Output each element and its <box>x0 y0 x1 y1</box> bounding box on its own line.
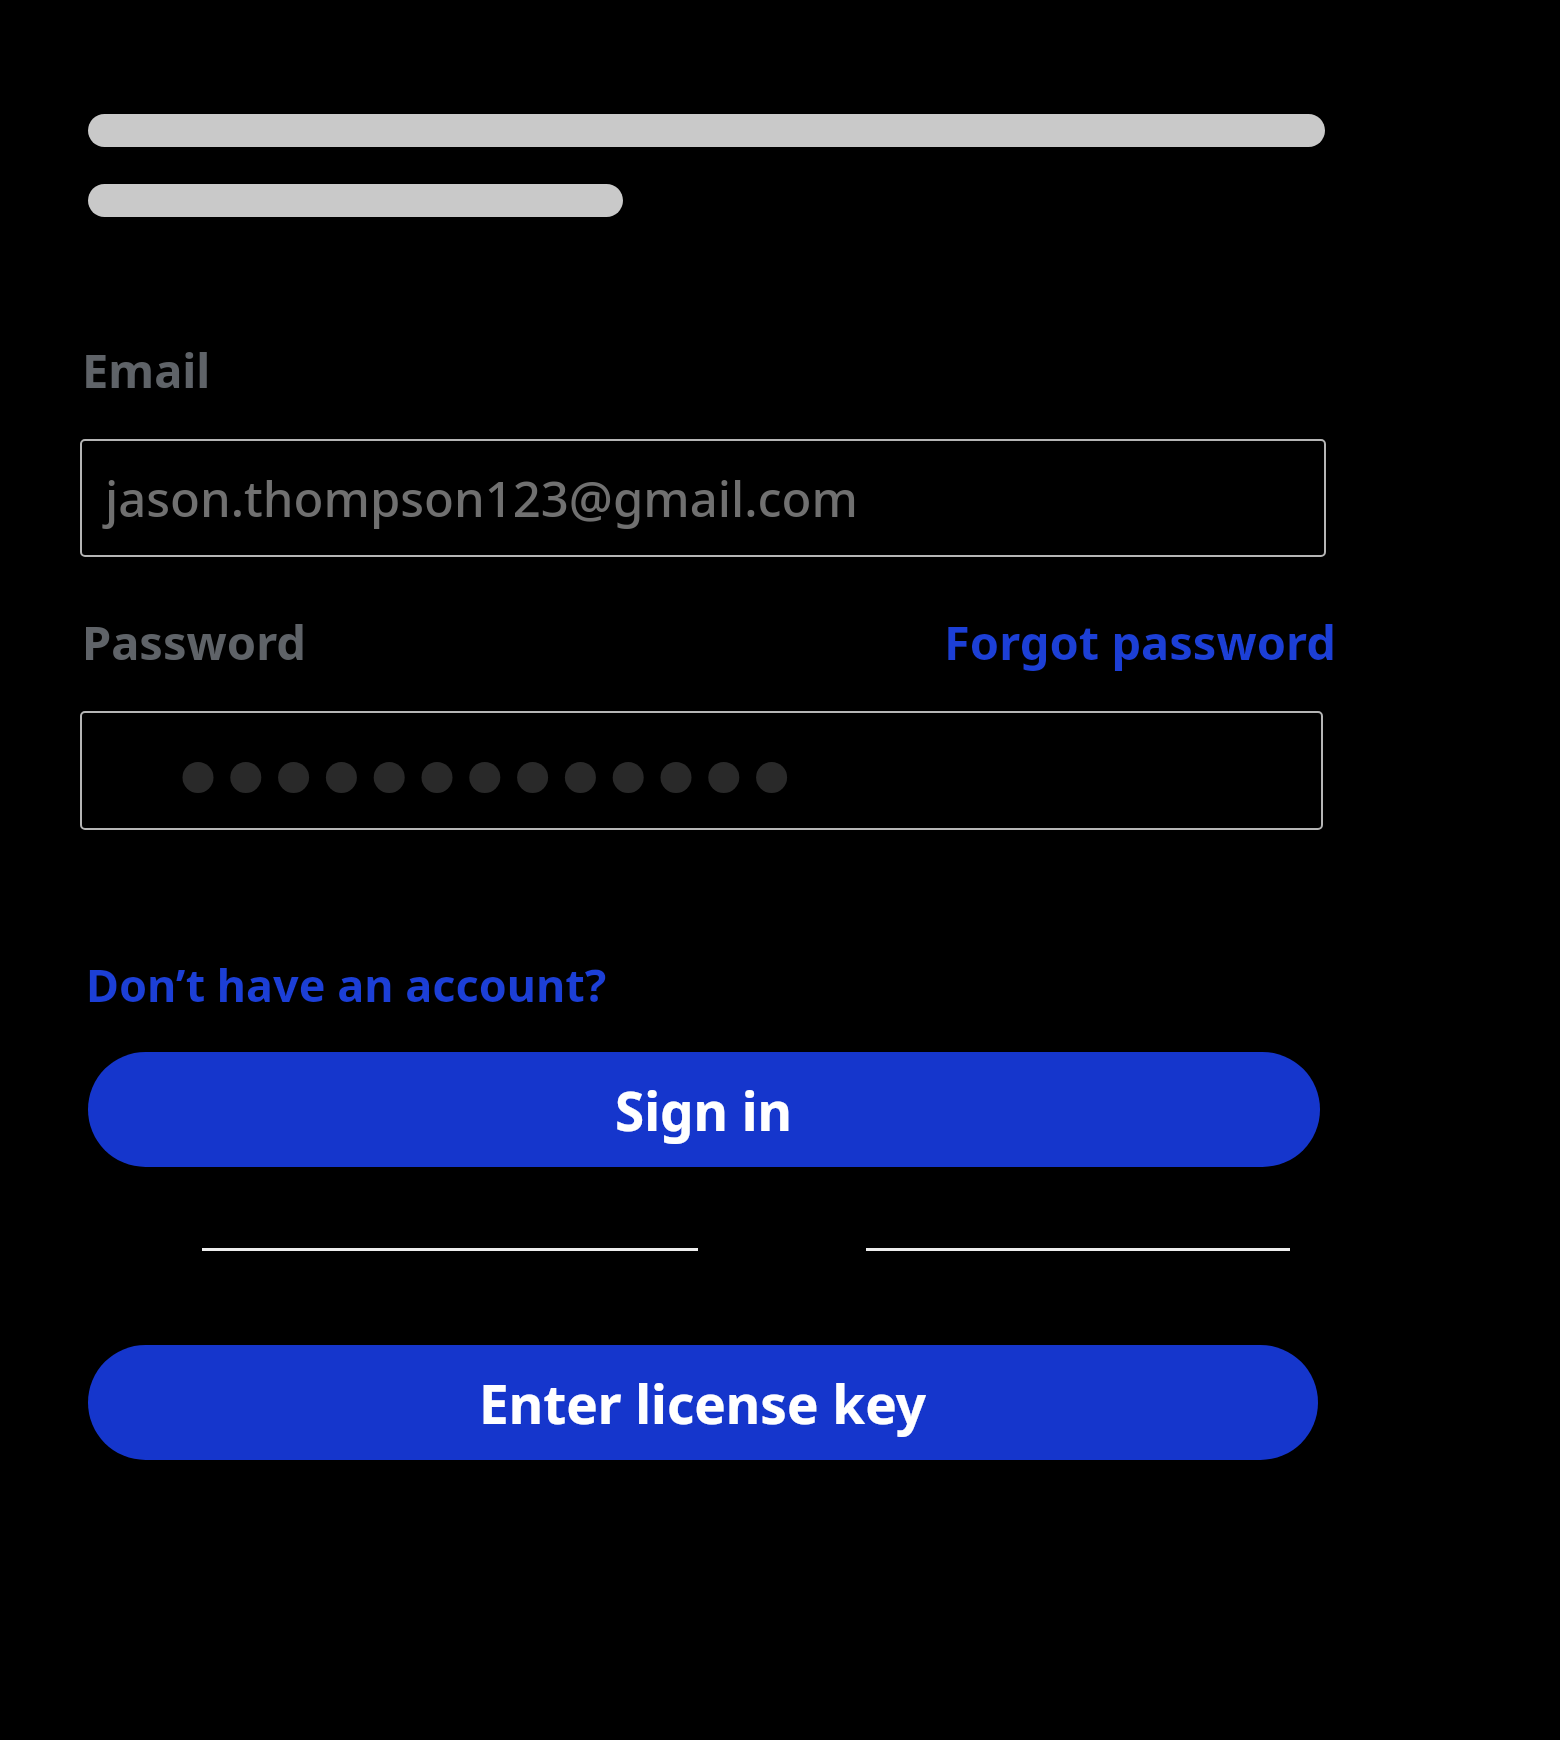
button[interactable]: jason.thompson123@gmail.com <box>80 439 1326 557</box>
staticText: Email <box>82 338 211 402</box>
button[interactable]: Forgot password <box>938 604 1342 680</box>
staticText: jason.thompson123@gmail.com <box>105 465 858 532</box>
button[interactable]: Don’t have an account? <box>80 948 613 1021</box>
staticText: Sign in <box>615 1074 793 1146</box>
staticText: Enter license key <box>479 1367 927 1439</box>
button[interactable] <box>80 711 1323 830</box>
button[interactable]: Sign in <box>88 1052 1320 1167</box>
staticText: Password <box>82 610 306 674</box>
staticText: Don’t have an account? <box>86 954 607 1015</box>
button[interactable]: Enter license key <box>88 1345 1318 1460</box>
staticText: Forgot password <box>944 610 1336 674</box>
